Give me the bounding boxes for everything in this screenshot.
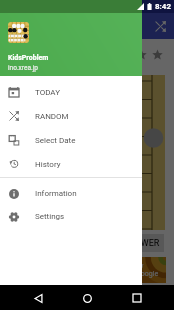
staticText: History <box>35 160 61 169</box>
staticText: Settings <box>35 212 65 221</box>
button[interactable]: Random <box>150 16 170 36</box>
button[interactable]: RANDOM <box>0 104 142 128</box>
staticText: TODAY <box>35 88 60 97</box>
button[interactable]: TODAY <box>0 80 142 104</box>
button[interactable]: by Google <box>60 257 166 283</box>
button[interactable]: Settings <box>0 205 142 228</box>
staticText: Select Date <box>35 136 76 145</box>
button[interactable]: Information <box>0 182 142 205</box>
button[interactable]: Home <box>75 286 99 310</box>
staticText: KidsProblem <box>8 54 49 62</box>
button[interactable]: Recent apps <box>125 286 149 310</box>
staticText: by Google <box>136 262 166 278</box>
button[interactable]: Back <box>26 286 50 310</box>
staticText: ANSWER <box>123 238 160 249</box>
staticText: 8:42 <box>155 2 172 11</box>
button[interactable]: Select Date <box>0 128 142 152</box>
button[interactable]: ANSWER <box>119 234 164 252</box>
staticText: ino.xrea.jp <box>8 64 38 72</box>
staticText: RANDOM <box>35 112 69 121</box>
button[interactable]: History <box>0 152 142 176</box>
staticText: Information <box>35 189 77 198</box>
